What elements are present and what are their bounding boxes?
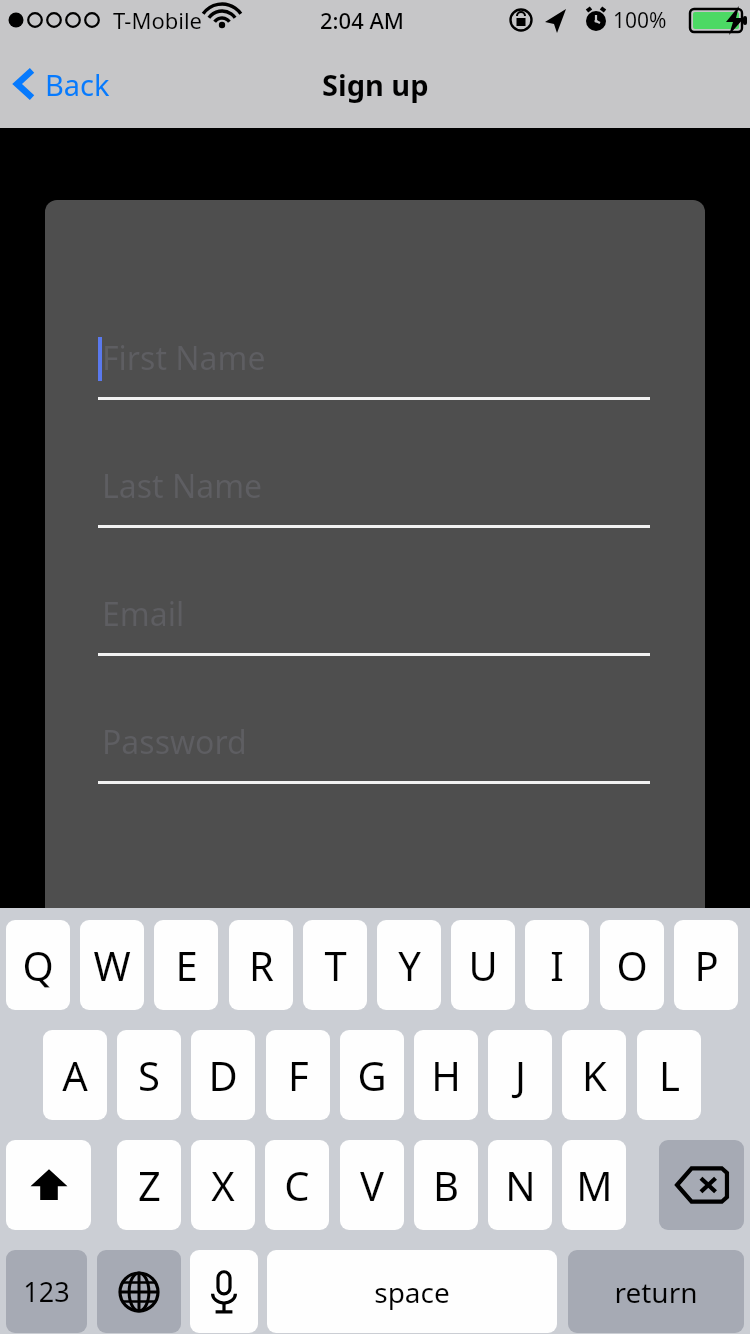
- button[interactable]: H: [414, 1030, 478, 1120]
- staticText: G: [357, 1048, 387, 1102]
- staticText: Q: [22, 938, 54, 992]
- button[interactable]: Email: [98, 588, 650, 656]
- staticText: A: [62, 1048, 88, 1102]
- staticText: V: [360, 1158, 384, 1212]
- button[interactable]: I: [525, 920, 589, 1010]
- staticText: 2:04 AM: [320, 5, 405, 35]
- button[interactable]: K: [562, 1030, 626, 1120]
- staticText: space: [374, 1273, 450, 1311]
- button[interactable]: D: [191, 1030, 255, 1120]
- staticText: T: [324, 938, 347, 992]
- button[interactable]: W: [80, 920, 144, 1010]
- staticText: I: [550, 938, 564, 992]
- staticText: C: [284, 1158, 310, 1212]
- button[interactable]: U: [451, 920, 515, 1010]
- button[interactable]: E: [154, 920, 218, 1010]
- button[interactable]: First Name: [98, 332, 650, 400]
- staticText: Last Name: [102, 464, 263, 508]
- button[interactable]: A: [43, 1030, 107, 1120]
- button[interactable]: Backspace: [659, 1140, 744, 1230]
- staticText: L: [659, 1048, 680, 1102]
- staticText: Sign up: [322, 65, 429, 104]
- button[interactable]: space: [267, 1250, 557, 1333]
- button[interactable]: S: [117, 1030, 181, 1120]
- button[interactable]: Password: [98, 716, 650, 784]
- button[interactable]: Q: [6, 920, 70, 1010]
- button[interactable]: F: [266, 1030, 330, 1120]
- staticText: N: [505, 1158, 536, 1212]
- button[interactable]: T: [303, 920, 367, 1010]
- button[interactable]: Last Name: [98, 460, 650, 528]
- staticText: First Name: [102, 336, 266, 380]
- staticText: M: [576, 1158, 613, 1212]
- staticText: S: [138, 1048, 160, 1102]
- button[interactable]: C: [265, 1140, 329, 1230]
- button[interactable]: 123: [6, 1250, 87, 1333]
- staticText: U: [468, 938, 498, 992]
- button[interactable]: Y: [377, 920, 441, 1010]
- button[interactable]: P: [674, 920, 738, 1010]
- button[interactable]: R: [229, 920, 293, 1010]
- staticText: Back: [45, 65, 110, 104]
- button[interactable]: L: [637, 1030, 701, 1120]
- staticText: H: [431, 1048, 461, 1102]
- button[interactable]: J: [488, 1030, 552, 1120]
- button[interactable]: G: [340, 1030, 404, 1120]
- staticText: P: [694, 938, 719, 992]
- button[interactable]: B: [414, 1140, 478, 1230]
- button[interactable]: V: [340, 1140, 404, 1230]
- staticText: D: [208, 1048, 238, 1102]
- button[interactable]: Change keyboard: [97, 1250, 181, 1333]
- staticText: 123: [23, 1273, 70, 1310]
- staticText: O: [616, 938, 648, 992]
- button[interactable]: M: [562, 1140, 626, 1230]
- staticText: R: [249, 938, 274, 992]
- button[interactable]: Z: [117, 1140, 181, 1230]
- staticText: T-Mobile: [113, 5, 202, 35]
- staticText: X: [211, 1158, 235, 1212]
- staticText: Z: [138, 1158, 161, 1212]
- button[interactable]: O: [600, 920, 664, 1010]
- staticText: 100%: [613, 6, 667, 35]
- staticText: Y: [398, 938, 421, 992]
- staticText: W: [93, 938, 131, 992]
- button[interactable]: return: [568, 1250, 744, 1333]
- staticText: J: [515, 1048, 526, 1102]
- staticText: K: [582, 1048, 607, 1102]
- button[interactable]: N: [488, 1140, 552, 1230]
- button[interactable]: X: [191, 1140, 255, 1230]
- staticText: Password: [102, 720, 247, 764]
- staticText: return: [614, 1273, 698, 1311]
- button[interactable]: Dictation: [190, 1250, 258, 1333]
- button[interactable]: Back: [0, 40, 126, 128]
- staticText: E: [175, 938, 198, 992]
- staticText: Email: [102, 592, 185, 636]
- button[interactable]: Shift: [6, 1140, 91, 1230]
- staticText: B: [433, 1158, 459, 1212]
- staticText: F: [288, 1048, 309, 1102]
